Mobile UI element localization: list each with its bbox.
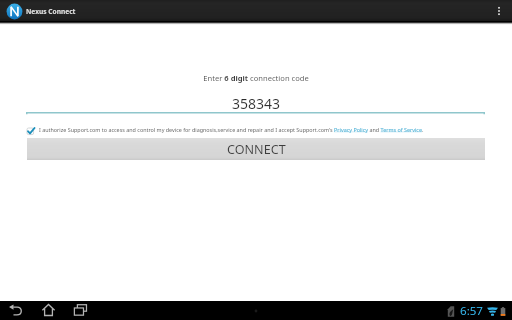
staticText: Nexus Connect xyxy=(26,7,76,16)
button[interactable]: CONNECT xyxy=(27,138,485,160)
button[interactable]: More options xyxy=(488,0,510,22)
button[interactable]: I authorize checkbox xyxy=(27,128,37,138)
button[interactable]: Home xyxy=(37,300,59,319)
button[interactable]: Recent apps xyxy=(69,300,91,319)
staticText: Enter 6 digit connection code xyxy=(0,73,512,83)
staticText: CONNECT xyxy=(227,141,286,158)
staticText: 358343 xyxy=(0,94,512,113)
button[interactable]: App icon xyxy=(6,3,23,20)
staticText: I authorize Support.com to access and co… xyxy=(39,126,424,133)
staticText: 6:57 xyxy=(460,303,484,319)
button[interactable]: Back xyxy=(5,300,27,319)
